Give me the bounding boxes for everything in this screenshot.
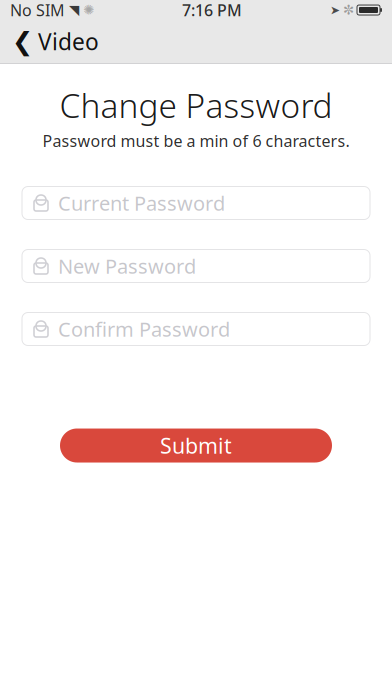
staticText: Confirm Password (58, 316, 230, 342)
staticText: 7:16 PM (182, 0, 242, 21)
staticText: Change Password (59, 83, 332, 127)
staticText: Submit (160, 431, 232, 460)
staticText: ◥ (69, 2, 79, 17)
staticText: No SIM (10, 0, 65, 21)
button[interactable]: ❮ (0, 20, 111, 63)
staticText: New Password (58, 253, 196, 279)
staticText: ✺ (79, 2, 94, 17)
staticText: ✼ (343, 2, 354, 17)
staticText: Current Password (58, 190, 225, 216)
staticText: ❮ (12, 27, 33, 56)
staticText: Password must be a min of 6 characters. (42, 130, 349, 151)
button[interactable]: Submit (60, 428, 332, 462)
staticText: ➤ (330, 3, 340, 17)
staticText (354, 2, 357, 18)
staticText: Video (38, 26, 99, 56)
